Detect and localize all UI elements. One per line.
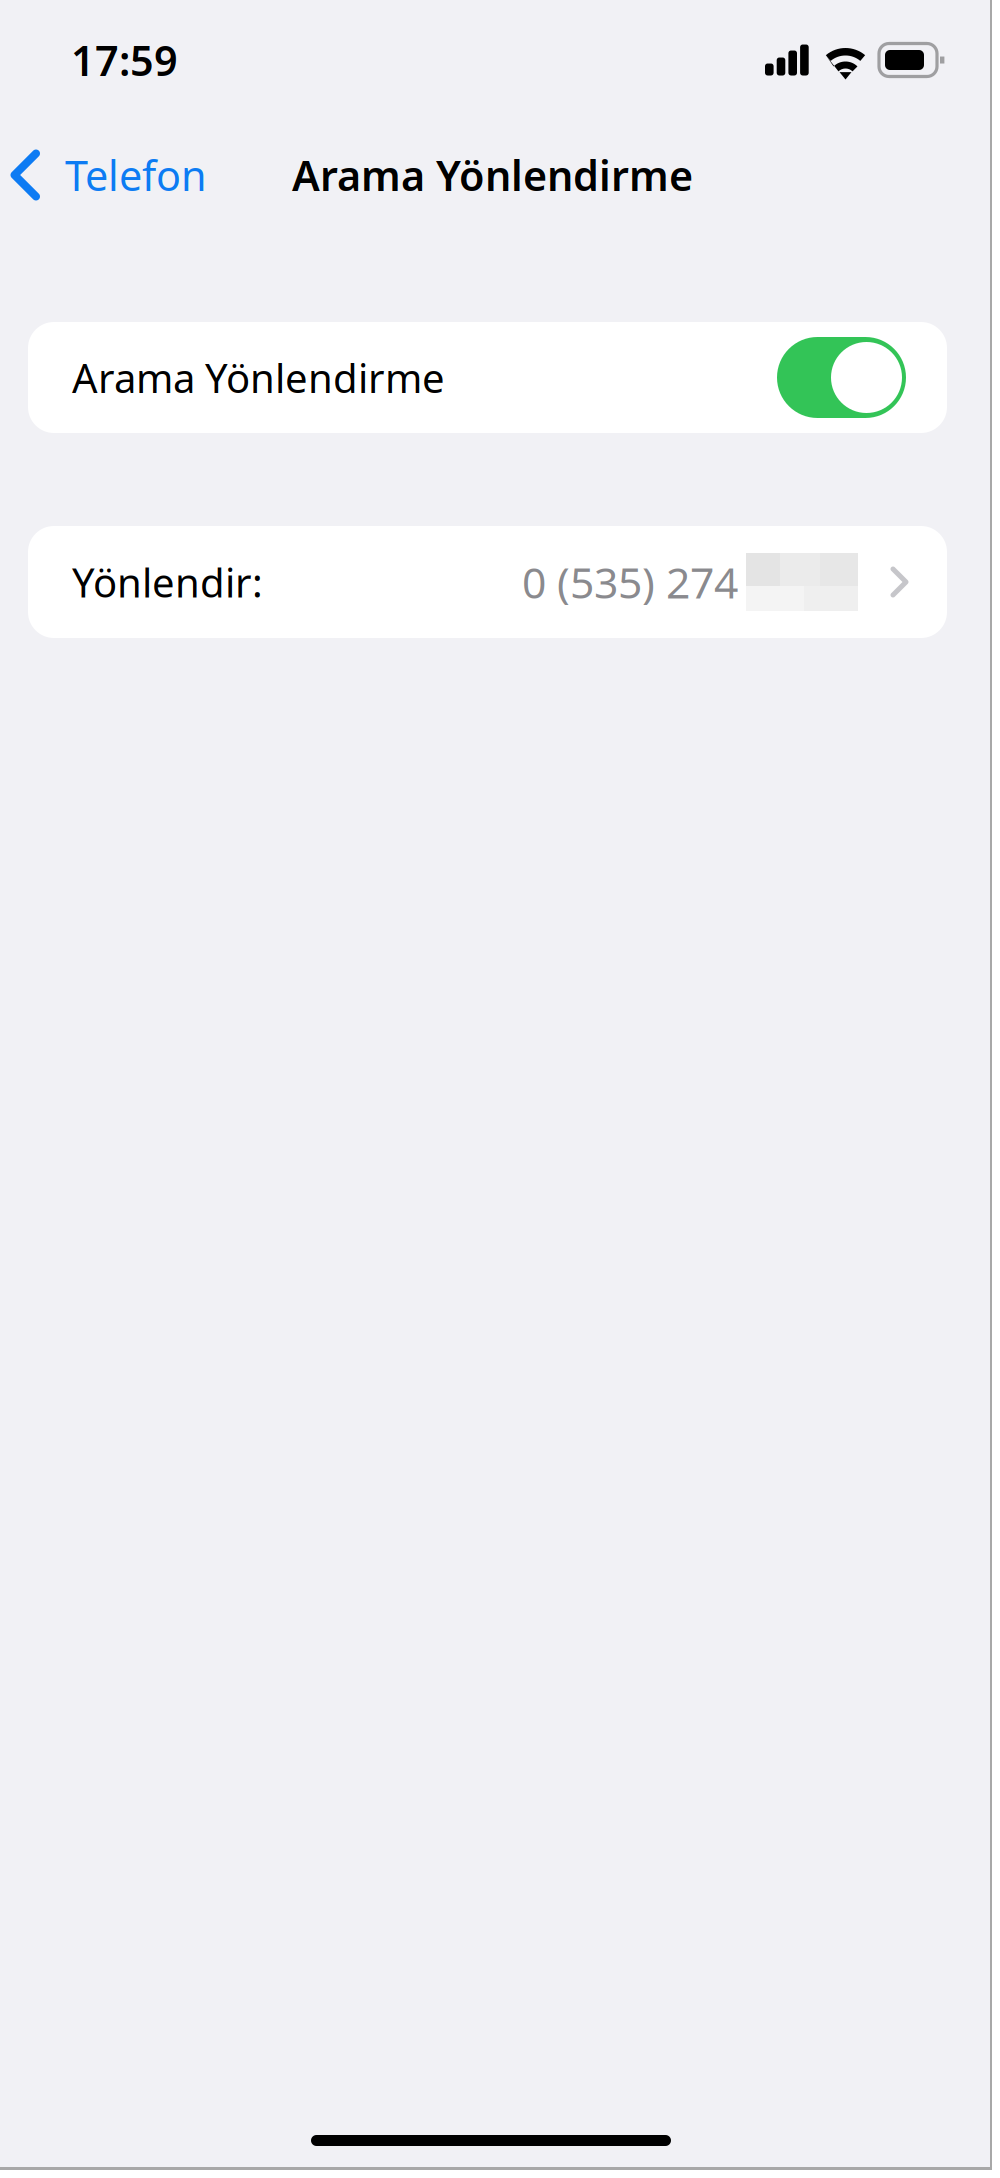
- staticText: Telefon: [65, 148, 207, 202]
- staticText: 17:59: [71, 33, 178, 87]
- staticText: Arama Yönlendirme: [292, 148, 693, 202]
- button[interactable]: Telefon: [0, 132, 221, 218]
- button[interactable]: Yönlendir:: [0, 526, 990, 638]
- button[interactable]: Arama Yönlendirme: [0, 322, 990, 433]
- staticText: Arama Yönlendirme: [72, 351, 445, 404]
- staticText: Yönlendir:: [72, 555, 263, 608]
- button[interactable]: Arama Yönlendirme açık: [777, 337, 906, 418]
- staticText: 0 (535) 274: [522, 554, 738, 610]
